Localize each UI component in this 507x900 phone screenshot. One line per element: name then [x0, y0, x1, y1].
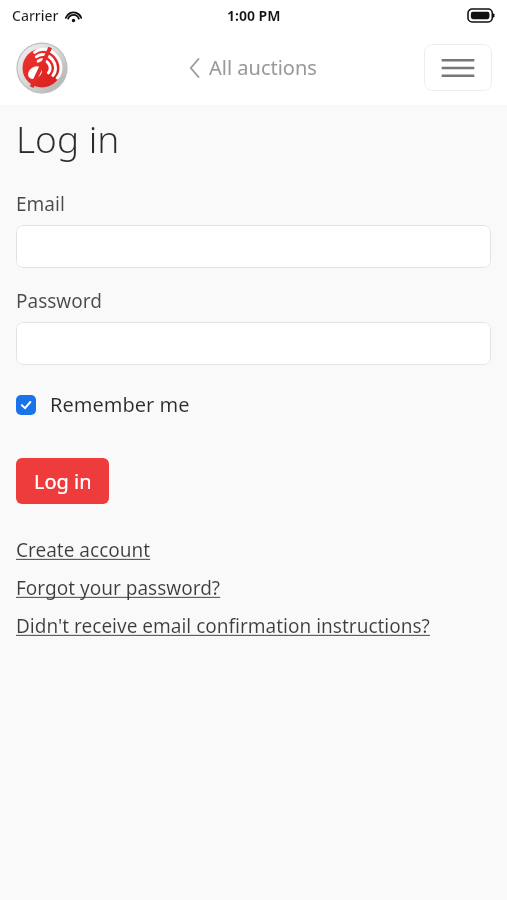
button[interactable]: Create account [16, 536, 157, 564]
staticText: Carrier [12, 6, 59, 25]
button[interactable]: Log in [16, 458, 109, 504]
button[interactable]: Menu [424, 44, 492, 91]
staticText: Password [16, 288, 102, 314]
staticText: Remember me [50, 391, 190, 418]
button[interactable]: Forgot your password? [16, 574, 227, 602]
button[interactable]: Text field [16, 322, 491, 365]
button[interactable]: Home [17, 43, 67, 93]
button[interactable]: Didn't receive email confirmation instru… [16, 612, 436, 640]
button[interactable]: Remember me [16, 389, 198, 420]
staticText: Email [16, 191, 65, 217]
staticText: Create account [16, 537, 151, 563]
staticText: Log in [34, 468, 92, 495]
staticText: All auctions [209, 54, 317, 81]
button[interactable]: All auctions [182, 48, 325, 87]
button[interactable]: Text field [16, 225, 491, 268]
staticText: Log in [16, 113, 120, 163]
staticText: 1:00 PM [227, 6, 281, 25]
staticText: Forgot your password? [16, 575, 221, 601]
staticText: Didn't receive email confirmation instru… [16, 613, 430, 639]
